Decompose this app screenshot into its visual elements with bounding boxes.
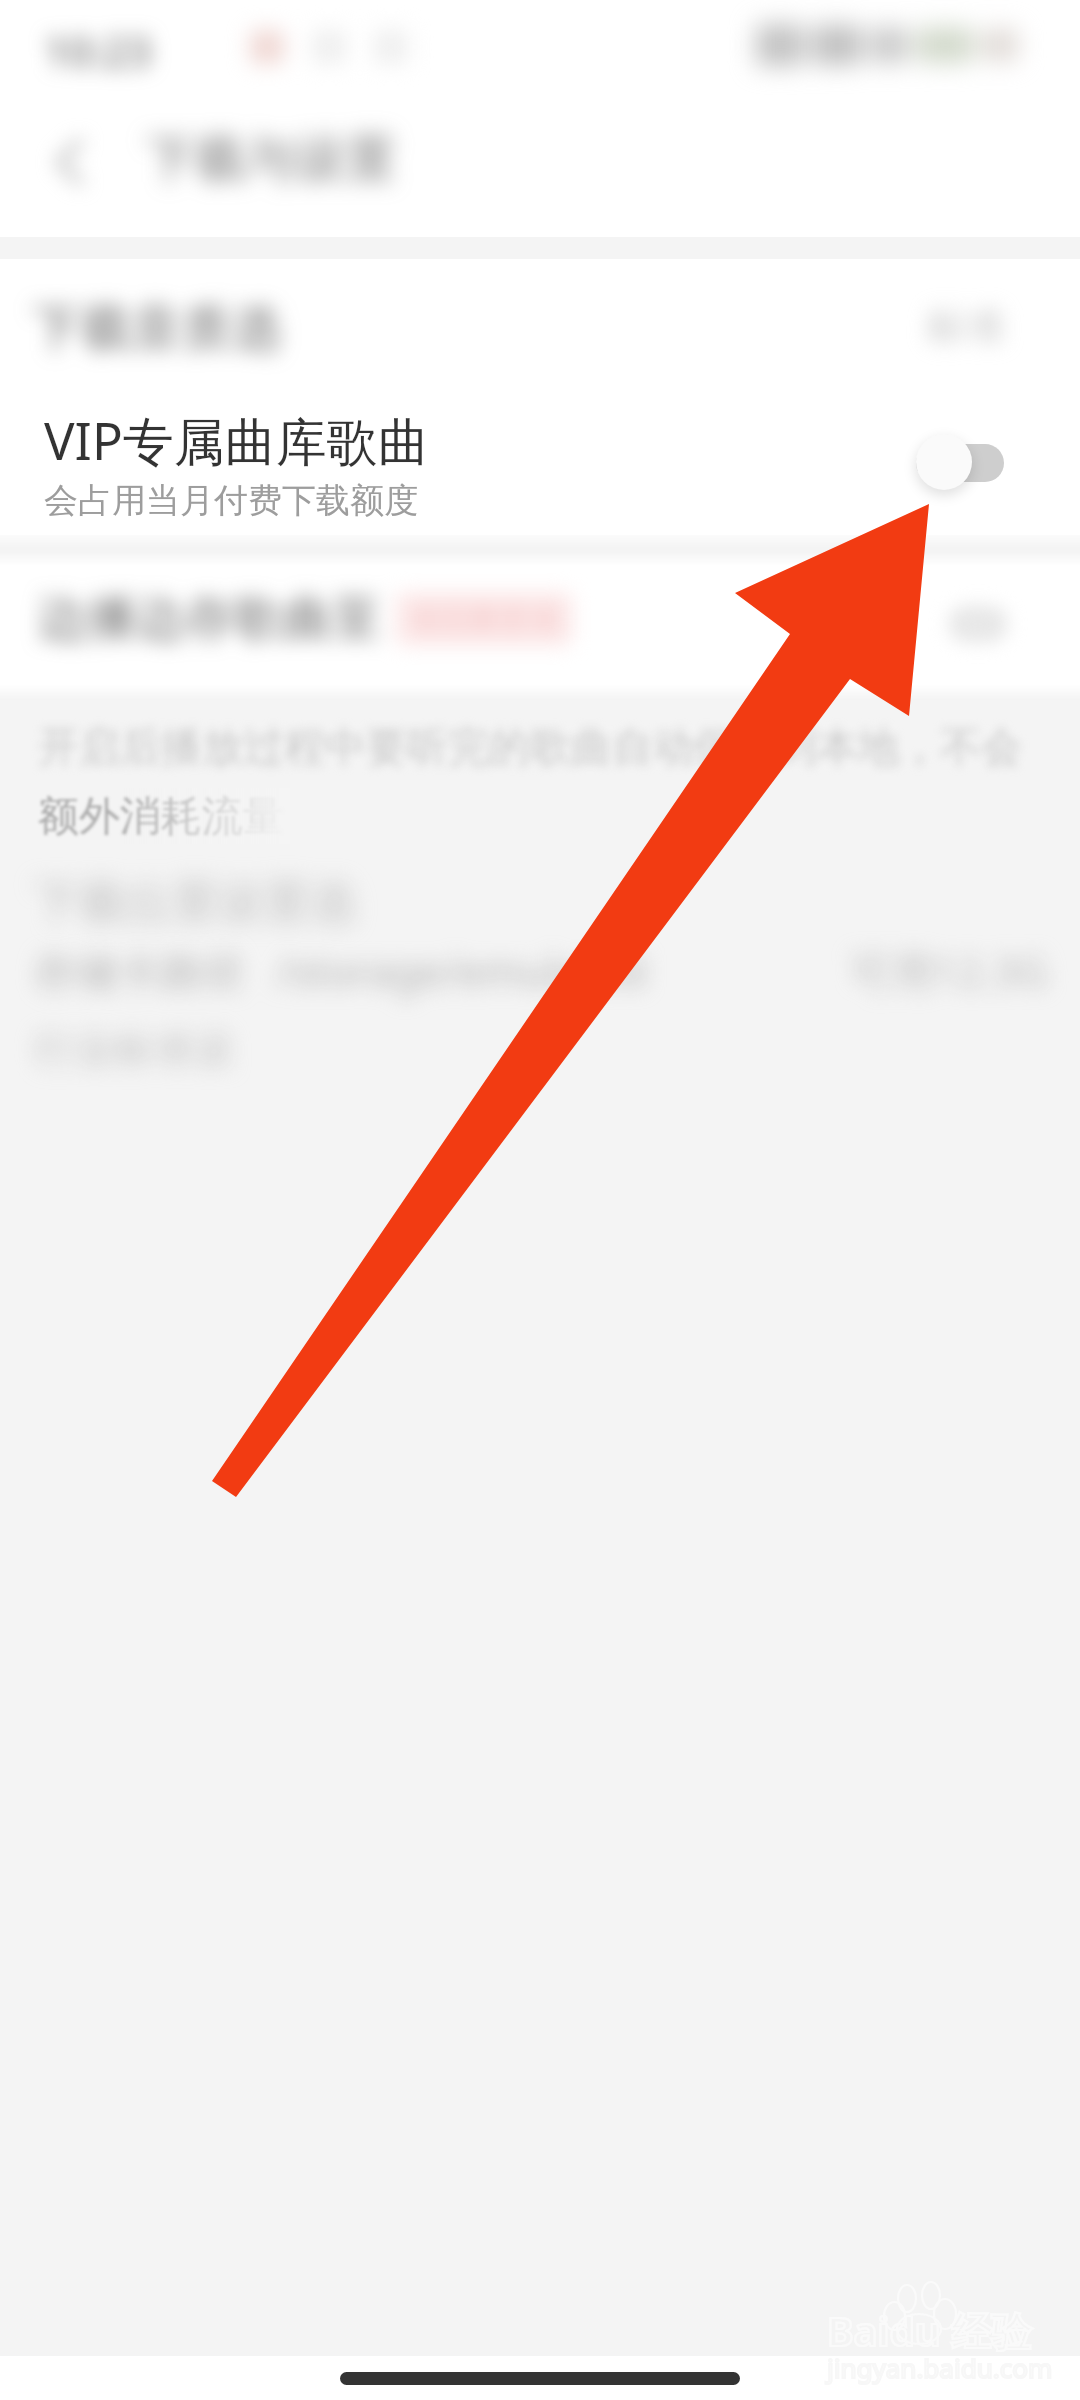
button[interactable]: 返回 Back (36, 126, 108, 198)
staticText: 行业标准设 (34, 1024, 234, 1074)
button[interactable]: 边播边存歌曲至 (0, 560, 1080, 690)
staticText: jingyan.baidu.com (827, 2350, 1053, 2385)
staticText: 下载与设置 (146, 128, 396, 191)
staticText: 边播边存歌曲至 (38, 588, 381, 650)
staticText: 会占用当月付费下载额度 (44, 479, 418, 522)
staticText: 存储卡路径 /storage/emulated (34, 942, 647, 999)
button[interactable]: 主屏幕手势条 Home (340, 2372, 740, 2385)
staticText: VIP专属曲库歌曲 (44, 405, 429, 475)
button[interactable]: VIP专属曲库歌曲 (0, 391, 1080, 535)
button[interactable]: 行业标准设 (0, 1004, 1080, 1072)
staticText: Baidu 经验 (827, 2303, 1032, 2358)
staticText: 可用12.3G (850, 942, 1048, 999)
staticText: 标准 (926, 301, 1006, 351)
button[interactable]: 存储卡路径 /storage/emulated (0, 924, 1080, 998)
staticText: 10:23 (44, 22, 152, 79)
button[interactable]: 下载音质选 (0, 259, 1080, 394)
staticText: 下载音质选 (32, 297, 282, 360)
staticText: 开启后播放过程中要听完的歌曲自动保存到本地，不会 (38, 722, 1022, 774)
staticText: 省流量更省 (409, 600, 559, 638)
staticText: 下载位置设置选 (34, 874, 356, 932)
button[interactable]: VIP专属曲库歌曲 开关 (914, 427, 1006, 499)
staticText: 额外消耗流量 (38, 791, 284, 843)
button[interactable]: 下载位置设置选 (0, 852, 1080, 922)
